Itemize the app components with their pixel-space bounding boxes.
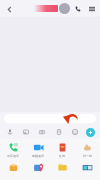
- button[interactable]: Call: [72, 3, 83, 14]
- button[interactable]: Message input: [4, 114, 96, 123]
- button[interactable]: [34, 3, 70, 14]
- button[interactable]: Voice: [5, 127, 15, 137]
- button[interactable]: 红包: [51, 141, 73, 158]
- button[interactable]: Camera: [37, 127, 47, 137]
- button[interactable]: [2, 161, 24, 173]
- button[interactable]: Files: [54, 127, 64, 137]
- staticText: 视频通话: [32, 154, 44, 158]
- staticText: 语音通话: [7, 154, 19, 158]
- button[interactable]: Back: [3, 3, 15, 15]
- button[interactable]: Add: [86, 128, 95, 137]
- button[interactable]: [76, 161, 98, 173]
- button[interactable]: [51, 161, 73, 173]
- button[interactable]: Gallery: [21, 127, 31, 137]
- button[interactable]: [27, 161, 49, 173]
- button[interactable]: Menu: [86, 3, 97, 14]
- staticText: 拍一拍: [83, 154, 92, 158]
- button[interactable]: 拍一拍: [76, 141, 98, 158]
- staticText: 红包: [59, 154, 65, 158]
- button[interactable]: 语音通话: [2, 141, 24, 158]
- button[interactable]: Emoji: [70, 127, 80, 137]
- button[interactable]: 视频通话: [27, 141, 49, 158]
